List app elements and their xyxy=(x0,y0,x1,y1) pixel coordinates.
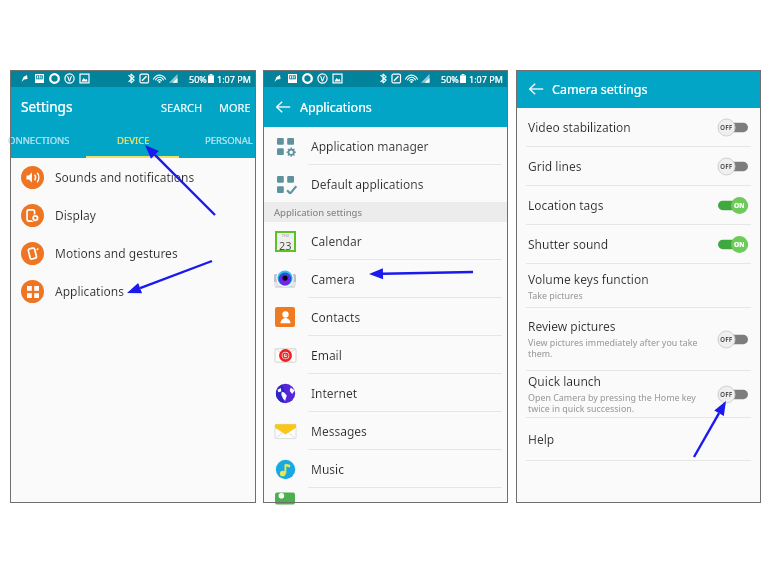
button[interactable]: Off xyxy=(718,386,748,403)
staticText: Volume keys function xyxy=(528,271,649,287)
staticText: PERSONAL xyxy=(205,134,253,147)
button[interactable]: Volume keys function xyxy=(516,264,761,307)
staticText: Email xyxy=(311,347,342,363)
button[interactable]: Contacts xyxy=(263,298,508,335)
button[interactable]: SEARCH xyxy=(158,96,206,119)
button[interactable]: Internet xyxy=(263,374,508,411)
staticText: Application settings xyxy=(274,206,362,219)
staticText: Take pictures xyxy=(528,289,583,301)
button[interactable]: Video stabilization xyxy=(516,108,761,146)
staticText: Video stabilization xyxy=(528,119,631,135)
staticText: Shutter sound xyxy=(528,236,609,252)
staticText: DEVICE xyxy=(117,134,150,147)
staticText: MORE xyxy=(219,100,251,115)
staticText: Help xyxy=(528,431,555,447)
button[interactable]: ONNECTIONS xyxy=(10,125,92,156)
staticText: OFF xyxy=(720,162,733,171)
staticText: OFF xyxy=(720,335,733,344)
button[interactable]: Quick launch xyxy=(516,371,761,417)
button[interactable] xyxy=(263,488,508,503)
button[interactable]: Email xyxy=(263,336,508,373)
button[interactable]: Back xyxy=(272,96,294,118)
staticText: 50% xyxy=(441,73,459,85)
staticText: Display xyxy=(55,207,96,223)
button[interactable]: PERSONAL xyxy=(174,125,256,156)
staticText: Default applications xyxy=(311,176,424,192)
staticText: Messages xyxy=(311,423,367,439)
button[interactable]: Display xyxy=(10,196,256,234)
button[interactable]: Applications xyxy=(10,272,256,310)
button[interactable]: Shutter sound xyxy=(516,225,761,263)
staticText: ONNECTIONS xyxy=(8,134,70,147)
staticText: 1:07 PM xyxy=(469,73,503,85)
staticText: ON xyxy=(734,201,745,210)
staticText: THU xyxy=(282,233,290,238)
button[interactable]: Music xyxy=(263,450,508,487)
button[interactable]: Camera xyxy=(263,260,508,297)
staticText: Sounds and notifications xyxy=(55,169,195,185)
button[interactable]: Motions and gestures xyxy=(10,234,256,272)
staticText: Motions and gestures xyxy=(55,245,178,261)
button[interactable]: Messages xyxy=(263,412,508,449)
staticText: 1:07 PM xyxy=(217,73,251,85)
button[interactable]: Off xyxy=(718,119,748,136)
button[interactable]: Grid lines xyxy=(516,147,761,185)
staticText: OFF xyxy=(720,390,733,399)
button[interactable]: Sounds and notifications xyxy=(10,158,256,196)
staticText: ON xyxy=(734,240,745,249)
staticText: Quick launch xyxy=(528,373,602,389)
staticText: Settings xyxy=(21,98,73,116)
staticText: Grid lines xyxy=(528,158,582,174)
staticText: Location tags xyxy=(528,197,604,213)
staticText: Open Camera by pressing the Home key twi… xyxy=(528,391,696,415)
staticText: Internet xyxy=(311,385,358,401)
button[interactable]: Off xyxy=(718,331,748,348)
staticText: Calendar xyxy=(311,233,362,249)
button[interactable]: MORE xyxy=(216,96,254,119)
button[interactable]: Application manager xyxy=(263,127,508,164)
staticText: Camera xyxy=(311,271,355,287)
button[interactable]: On xyxy=(718,197,748,214)
staticText: Application manager xyxy=(311,138,429,154)
button[interactable]: Location tags xyxy=(516,186,761,224)
staticText: Review pictures xyxy=(528,318,616,334)
button[interactable]: Default applications xyxy=(263,165,508,202)
staticText: Applications xyxy=(55,283,124,299)
button[interactable]: On xyxy=(718,236,748,253)
button[interactable]: Review pictures xyxy=(516,308,761,370)
staticText: 50% xyxy=(189,73,207,85)
button[interactable]: DEVICE xyxy=(92,125,174,156)
staticText: View pictures immediately after you take… xyxy=(528,336,698,360)
button[interactable]: Back xyxy=(525,78,547,100)
button[interactable]: Help xyxy=(516,418,761,460)
button[interactable]: THU xyxy=(263,222,508,259)
staticText: Camera settings xyxy=(552,81,648,98)
staticText: Contacts xyxy=(311,309,361,325)
staticText: Music xyxy=(311,461,344,477)
staticText: SEARCH xyxy=(161,100,203,115)
staticText: Applications xyxy=(300,99,372,116)
staticText: 23 xyxy=(279,238,292,252)
staticText: OFF xyxy=(720,123,733,132)
button[interactable]: Off xyxy=(718,158,748,175)
